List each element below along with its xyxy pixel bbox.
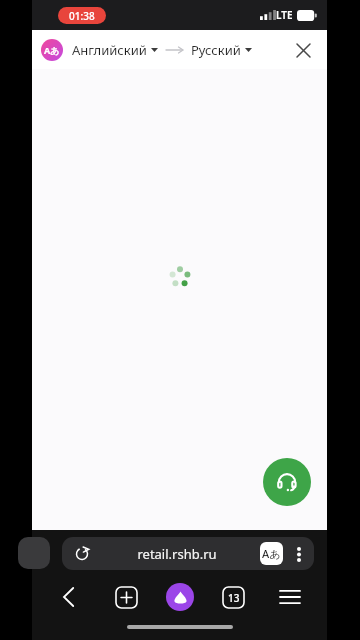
button[interactable]: Reload xyxy=(71,543,93,565)
button[interactable]: Previous tab xyxy=(18,537,50,569)
button[interactable]: More options xyxy=(288,543,310,565)
button[interactable]: Support chat xyxy=(263,458,311,506)
staticText: retail.rshb.ru xyxy=(137,545,217,563)
staticText: 01:38 xyxy=(69,9,95,23)
button[interactable]: Translator xyxy=(41,39,63,61)
button[interactable]: Menu xyxy=(273,580,307,614)
button[interactable]: Tabs, 13 open xyxy=(216,580,250,614)
staticText: Английский xyxy=(72,41,147,59)
button[interactable]: New tab xyxy=(109,580,143,614)
staticText: LTE xyxy=(276,8,293,22)
button[interactable]: Английский xyxy=(72,41,158,59)
staticText: 13 xyxy=(228,591,240,605)
button[interactable]: Reload xyxy=(62,537,314,570)
button[interactable]: Alice assistant xyxy=(166,583,194,611)
button[interactable]: Translate page xyxy=(260,542,283,565)
button[interactable]: Close xyxy=(291,38,315,62)
button[interactable]: Back xyxy=(52,580,86,614)
staticText: Русский xyxy=(191,41,241,59)
button[interactable]: Русский xyxy=(191,41,252,59)
staticText: Aあ xyxy=(44,44,60,56)
staticText: Aあ xyxy=(262,546,281,561)
